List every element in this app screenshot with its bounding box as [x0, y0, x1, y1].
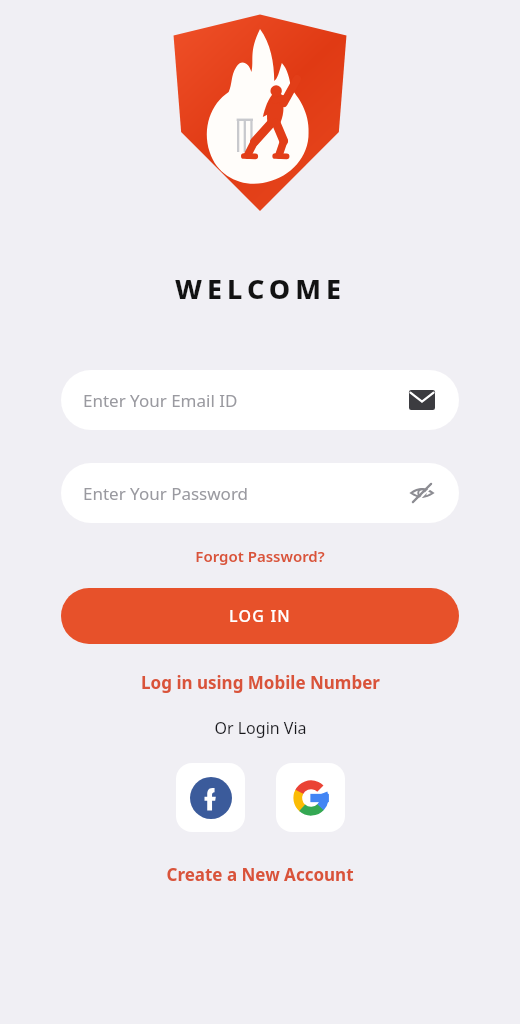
staticText: WELCOME	[175, 270, 346, 307]
other: Email	[407, 385, 437, 415]
staticText: Log in using Mobile Number	[141, 671, 380, 694]
button[interactable]: Enter Your Email ID	[61, 370, 459, 430]
button[interactable]: LOG IN	[61, 588, 459, 644]
button[interactable]: Sign in with Google	[276, 763, 345, 832]
other: Show password	[407, 478, 437, 508]
button[interactable]: Create a New Account	[158, 860, 362, 889]
staticText: LOG IN	[229, 605, 291, 627]
button[interactable]: Enter Your Password	[61, 463, 459, 523]
staticText: Or Login Via	[214, 717, 307, 739]
button[interactable]: Forgot Password?	[187, 544, 333, 568]
staticText: Create a New Account	[166, 863, 354, 886]
staticText: Enter Your Password	[83, 482, 249, 505]
staticText: Enter Your Email ID	[83, 389, 238, 412]
button[interactable]: Log in using Mobile Number	[133, 668, 388, 697]
staticText: Forgot Password?	[195, 546, 325, 566]
button[interactable]: Sign in with Facebook	[176, 763, 245, 832]
